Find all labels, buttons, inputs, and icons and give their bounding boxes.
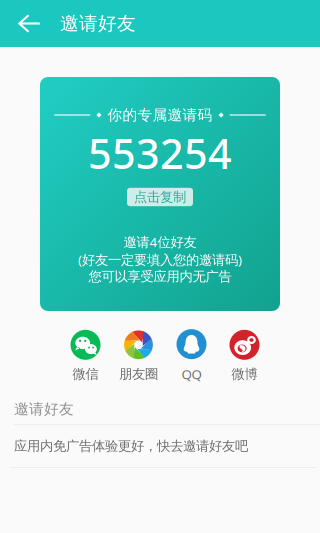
staticText: (好友一定要填入您的邀请码) xyxy=(78,251,242,268)
staticText: QQ xyxy=(181,365,201,383)
staticText: 微博 xyxy=(231,366,257,382)
staticText: 你的专属邀请码 xyxy=(107,106,212,124)
staticText: 朋友圈 xyxy=(119,366,158,382)
button[interactable]: 微信 xyxy=(59,331,112,381)
staticText: 您可以享受应用内无广告 xyxy=(88,268,231,285)
staticText: 553254 xyxy=(88,126,232,180)
button[interactable]: 点击复制 xyxy=(127,188,193,206)
button[interactable]: 朋友圈 xyxy=(112,331,165,381)
staticText: 点击复制 xyxy=(134,189,186,205)
staticText: 邀请4位好友 xyxy=(123,233,196,251)
button[interactable]: 微博 xyxy=(218,331,271,381)
staticText: 邀请好友 xyxy=(60,12,136,35)
staticText: 应用内免广告体验更好，快去邀请好友吧 xyxy=(14,438,248,454)
button[interactable]: Back xyxy=(0,0,50,47)
staticText: 微信 xyxy=(72,366,98,382)
staticText: 邀请好友 xyxy=(14,400,74,418)
button[interactable]: QQ xyxy=(165,331,218,381)
